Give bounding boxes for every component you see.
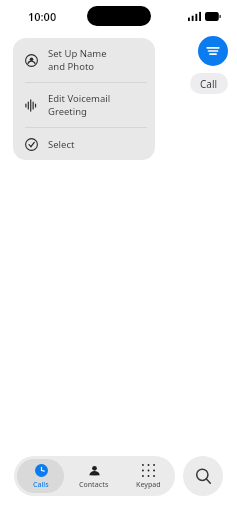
staticText: 10:00 (28, 9, 57, 24)
button[interactable]: Search (183, 456, 223, 496)
staticText: Keypad (136, 480, 161, 490)
button[interactable]: Keypad (124, 459, 172, 493)
staticText: Select (48, 138, 75, 151)
button[interactable]: Select (13, 128, 155, 160)
button[interactable]: Edit Voicemail (13, 83, 155, 127)
button[interactable]: Set Up Name (13, 38, 155, 82)
staticText: Set Up Name (48, 47, 107, 60)
staticText: Calls (33, 480, 49, 490)
button[interactable]: Call (190, 73, 228, 94)
staticText: and Photo (48, 60, 95, 73)
button[interactable]: Calls (17, 459, 64, 493)
staticText: Call (200, 77, 218, 91)
staticText: Contacts (79, 480, 109, 490)
button[interactable]: Filter calls (198, 36, 228, 66)
staticText: Greeting (48, 105, 87, 118)
button[interactable]: Contacts (70, 459, 118, 493)
staticText: Edit Voicemail (48, 92, 111, 105)
